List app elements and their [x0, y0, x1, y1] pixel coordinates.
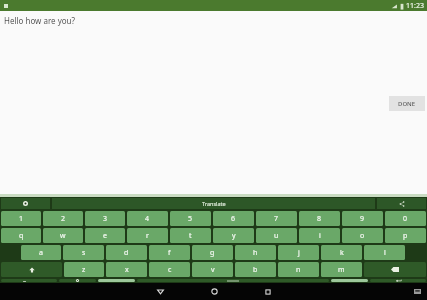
- button[interactable]: q: [1, 228, 41, 243]
- button[interactable]: Back: [143, 283, 177, 300]
- button[interactable]: 8: [299, 211, 340, 226]
- button[interactable]: t: [170, 228, 211, 243]
- staticText: Hello how are you?: [4, 15, 76, 26]
- staticText: 4: [145, 214, 150, 224]
- button[interactable]: a: [21, 245, 61, 260]
- staticText: a: [39, 248, 43, 258]
- staticText: w: [60, 231, 66, 241]
- staticText: q: [19, 231, 24, 241]
- button[interactable]: Shift: [1, 262, 62, 277]
- button[interactable]: 9: [342, 211, 383, 226]
- button[interactable]: z: [64, 262, 104, 277]
- button[interactable]: i: [299, 228, 340, 243]
- button[interactable]: v: [192, 262, 233, 277]
- staticText: Sym: [23, 279, 35, 282]
- button[interactable]: .: [331, 279, 368, 282]
- button[interactable]: 5: [170, 211, 211, 226]
- staticText: k: [340, 248, 344, 258]
- staticText: 6: [231, 214, 236, 224]
- button[interactable]: Sym: [1, 279, 57, 282]
- staticText: p: [403, 231, 408, 241]
- button[interactable]: x: [106, 262, 147, 277]
- button[interactable]: 6: [213, 211, 254, 226]
- button[interactable]: w: [43, 228, 83, 243]
- button[interactable]: m: [321, 262, 362, 277]
- staticText: i: [319, 231, 321, 241]
- button[interactable]: f: [149, 245, 190, 260]
- staticText: o: [360, 231, 365, 241]
- staticText: s: [82, 248, 86, 258]
- staticText: 3: [103, 214, 108, 224]
- button[interactable]: y: [213, 228, 254, 243]
- staticText: d: [124, 248, 129, 258]
- button[interactable]: d: [106, 245, 147, 260]
- staticText: r: [146, 231, 149, 241]
- button[interactable]: o: [342, 228, 383, 243]
- button[interactable]: 4: [127, 211, 168, 226]
- button[interactable]: 2: [43, 211, 83, 226]
- button[interactable]: Backspace: [364, 262, 426, 277]
- button[interactable]: u: [256, 228, 297, 243]
- button[interactable]: r: [127, 228, 168, 243]
- button[interactable]: s: [63, 245, 104, 260]
- button[interactable]: 7: [256, 211, 297, 226]
- button[interactable]: Settings: [1, 198, 50, 209]
- button[interactable]: g: [192, 245, 233, 260]
- staticText: 9: [360, 214, 365, 224]
- button[interactable]: Emoji: [59, 279, 96, 282]
- staticText: Translate: [202, 200, 226, 207]
- button[interactable]: Home: [197, 283, 231, 300]
- button[interactable]: Recent apps: [251, 283, 285, 300]
- button[interactable]: Enter: [370, 279, 426, 282]
- staticText: DONE: [398, 100, 416, 108]
- staticText: u: [274, 231, 279, 241]
- staticText: j: [298, 248, 300, 258]
- button[interactable]: k: [321, 245, 362, 260]
- staticText: g: [210, 248, 215, 258]
- staticText: x: [125, 265, 129, 275]
- button[interactable]: c: [149, 262, 190, 277]
- button[interactable]: ,: [98, 279, 135, 282]
- staticText: 0: [403, 214, 408, 224]
- button[interactable]: DONE: [389, 96, 425, 111]
- staticText: 2: [61, 214, 66, 224]
- staticText: e: [103, 231, 107, 241]
- staticText: z: [82, 265, 86, 275]
- button[interactable]: p: [385, 228, 426, 243]
- button[interactable]: h: [235, 245, 276, 260]
- staticText: 5: [188, 214, 193, 224]
- button[interactable]: Space: [137, 279, 329, 282]
- staticText: l: [384, 248, 386, 258]
- staticText: 8: [317, 214, 322, 224]
- button[interactable]: n: [278, 262, 319, 277]
- staticText: h: [253, 248, 258, 258]
- button[interactable]: b: [235, 262, 276, 277]
- button[interactable]: Translate: [52, 198, 375, 209]
- staticText: 11:23: [406, 1, 424, 11]
- staticText: n: [296, 265, 301, 275]
- button[interactable]: 0: [385, 211, 426, 226]
- button[interactable]: e: [85, 228, 125, 243]
- staticText: 1: [19, 214, 24, 224]
- button[interactable]: 1: [1, 211, 41, 226]
- staticText: c: [168, 265, 172, 275]
- button[interactable]: Hide keyboard: [411, 283, 423, 300]
- button[interactable]: 3: [85, 211, 125, 226]
- button[interactable]: j: [278, 245, 319, 260]
- staticText: f: [168, 248, 171, 258]
- staticText: t: [189, 231, 192, 241]
- staticText: v: [211, 265, 215, 275]
- button[interactable]: l: [364, 245, 405, 260]
- staticText: m: [338, 265, 345, 275]
- staticText: 7: [274, 214, 279, 224]
- staticText: b: [253, 265, 258, 275]
- staticText: y: [232, 231, 236, 241]
- button[interactable]: Share: [377, 198, 426, 209]
